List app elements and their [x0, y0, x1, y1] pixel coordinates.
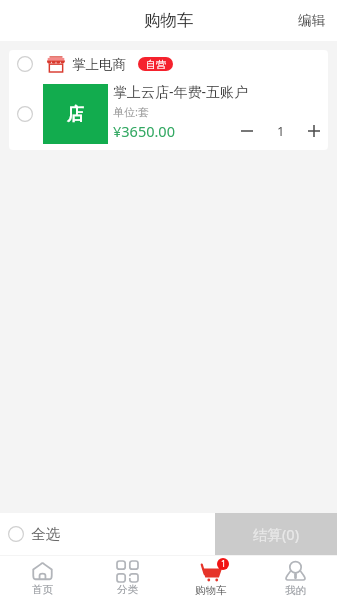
staticText: 全选	[31, 525, 60, 543]
button[interactable]: 编辑	[286, 0, 337, 41]
button[interactable]: 1	[169, 555, 253, 600]
staticText: 购物车	[144, 10, 194, 31]
staticText: 编辑	[298, 12, 325, 29]
button[interactable]: 全选	[0, 513, 215, 555]
staticText: 1	[277, 122, 285, 140]
staticText: 1	[221, 558, 226, 570]
button[interactable]: 我的	[253, 555, 337, 600]
staticText: 首页	[32, 583, 53, 596]
staticText: 店	[67, 104, 84, 125]
staticText: 购物车	[195, 584, 227, 597]
staticText: 自营	[146, 58, 166, 71]
staticText: 我的	[285, 584, 306, 597]
staticText: 结算(0)	[253, 524, 299, 544]
button[interactable]: 掌上电商	[9, 50, 328, 78]
staticText: ¥3650.00	[113, 121, 175, 141]
button[interactable]: 结算(0)	[215, 513, 337, 555]
button[interactable]: 首页	[0, 555, 85, 600]
button[interactable]: Increase quantity	[301, 120, 327, 142]
staticText: 单位:套	[113, 104, 149, 119]
button[interactable]: 分类	[85, 555, 169, 600]
staticText: 掌上电商	[72, 56, 126, 73]
button[interactable]: Decrease quantity	[234, 120, 260, 142]
staticText: 掌上云店-年费-五账户	[113, 82, 249, 101]
staticText: 分类	[117, 583, 138, 596]
